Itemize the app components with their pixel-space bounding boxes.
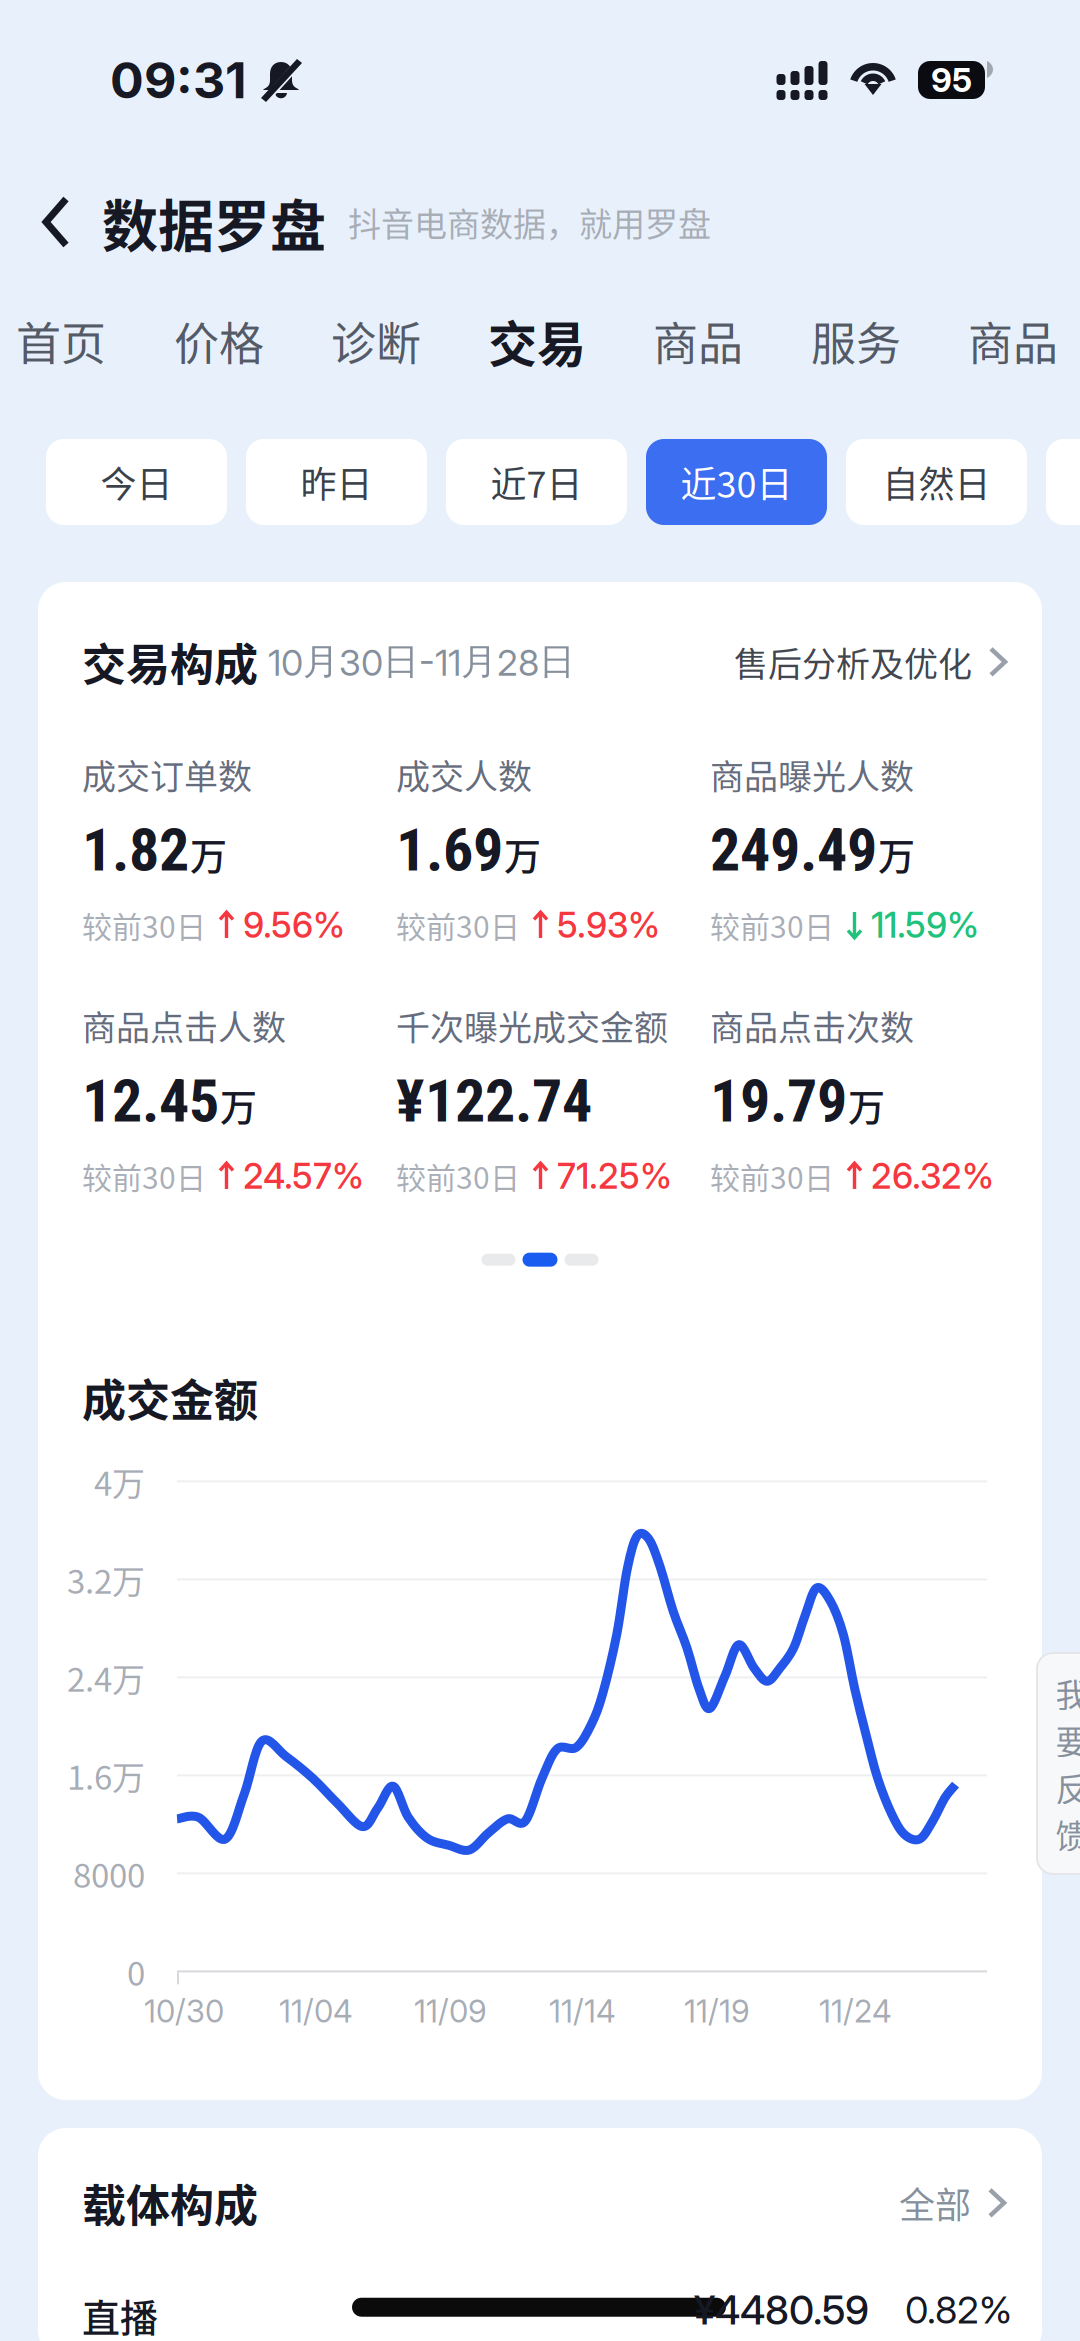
staticText: 商品点击次数	[710, 1001, 914, 1050]
staticText: 24.57%	[243, 1155, 364, 1197]
button[interactable]: 今日	[46, 439, 227, 525]
staticText: 直播	[82, 2288, 158, 2341]
staticText: 万	[848, 1079, 885, 1132]
staticText: 11/14	[549, 1992, 616, 2030]
staticText: 首页	[16, 308, 106, 374]
staticText: 249.49	[710, 815, 877, 885]
staticText: 10/30	[144, 1992, 224, 2030]
staticText: 全部	[899, 2177, 971, 2229]
staticText: 馈	[1055, 1810, 1080, 1858]
staticText: 商品	[653, 308, 743, 374]
staticText: 10月30日-11月28日	[268, 639, 575, 685]
staticText: 今日	[100, 456, 172, 508]
staticText: 抖音电商数据，就用罗盘	[348, 198, 711, 246]
staticText: 万	[504, 828, 541, 881]
staticText: 交易构成	[82, 630, 258, 694]
staticText: 成交订单数	[82, 750, 252, 799]
button[interactable]: 价格	[0, 284, 264, 398]
staticText: 0	[127, 1947, 145, 1995]
staticText: 1.69	[396, 815, 503, 885]
staticText: 数据罗盘	[102, 181, 326, 263]
staticText: 19.79	[710, 1066, 847, 1136]
staticText: 售后分析及优化	[734, 637, 972, 686]
button[interactable]: 首页	[0, 284, 106, 398]
staticText: 万	[220, 1079, 257, 1132]
staticText: 11.59%	[871, 904, 979, 946]
staticText: 要	[1055, 1716, 1080, 1764]
staticText: 12.45	[82, 1066, 219, 1136]
button[interactable]: 售后分析及优化	[734, 637, 1009, 686]
staticText: 9.56%	[243, 904, 345, 946]
button[interactable]	[1046, 439, 1080, 525]
button[interactable]: 商品	[0, 284, 1058, 398]
staticText: 09:31	[110, 50, 247, 110]
staticText: 8000	[73, 1849, 145, 1897]
staticText: 成交人数	[396, 750, 532, 799]
staticText: 商品曝光人数	[710, 750, 914, 799]
staticText: 1.82	[82, 815, 189, 885]
staticText: 交易	[488, 305, 586, 376]
button[interactable]: 昨日	[246, 439, 427, 525]
staticText: 4万	[94, 1457, 145, 1505]
staticText: 5.93%	[557, 904, 660, 946]
button[interactable]: 诊断	[0, 284, 421, 398]
staticText: 11/24	[819, 1992, 892, 2030]
staticText: 昨日	[300, 456, 372, 508]
staticText: 较前30日	[710, 903, 834, 947]
staticText: 26.32%	[871, 1155, 994, 1197]
staticText: 诊断	[331, 308, 421, 374]
staticText: ¥122.74	[396, 1066, 592, 1136]
staticText: 近30日	[680, 456, 792, 508]
button[interactable]: 服务	[0, 284, 901, 398]
staticText: 1.6万	[67, 1751, 145, 1799]
staticText: 商品	[968, 308, 1058, 374]
button[interactable]: 返回	[0, 174, 102, 270]
staticText: 0.82%	[905, 2287, 1012, 2333]
staticText: 较前30日	[82, 903, 206, 947]
staticText: 近7日	[490, 456, 582, 508]
button[interactable]: 商品	[0, 284, 743, 398]
staticText: 95	[931, 60, 972, 100]
staticText: 自然日	[882, 456, 990, 508]
staticText: 反	[1055, 1763, 1080, 1811]
staticText: 11/09	[414, 1992, 487, 2030]
staticText: 我	[1055, 1669, 1080, 1717]
staticText: ¥4480.59	[694, 2286, 869, 2334]
staticText: 71.25%	[557, 1155, 672, 1197]
staticText: 载体构成	[82, 2171, 258, 2235]
staticText: 11/19	[684, 1992, 750, 2030]
button[interactable]: 近7日	[446, 439, 627, 525]
button[interactable]: 自然日	[846, 439, 1027, 525]
staticText: 3.2万	[67, 1555, 145, 1603]
staticText: 成交金额	[82, 1366, 258, 1429]
staticText: 11/04	[279, 1992, 353, 2030]
staticText: 万	[190, 828, 227, 881]
staticText: 服务	[811, 308, 901, 374]
button[interactable]: 我要反馈	[1037, 1653, 1080, 1874]
staticText: 较前30日	[396, 1154, 520, 1198]
staticText: 千次曝光成交金额	[396, 1001, 668, 1050]
button[interactable]: 交易	[0, 284, 586, 398]
button[interactable]: 全部	[899, 2177, 1008, 2229]
staticText: 较前30日	[82, 1154, 206, 1198]
staticText: 万	[878, 828, 915, 881]
staticText: 商品点击人数	[82, 1001, 286, 1050]
staticText: 2.4万	[67, 1653, 145, 1701]
staticText: 较前30日	[396, 903, 520, 947]
button[interactable]: 近30日	[646, 439, 827, 525]
staticText: 价格	[174, 308, 264, 374]
staticText: 较前30日	[710, 1154, 834, 1198]
